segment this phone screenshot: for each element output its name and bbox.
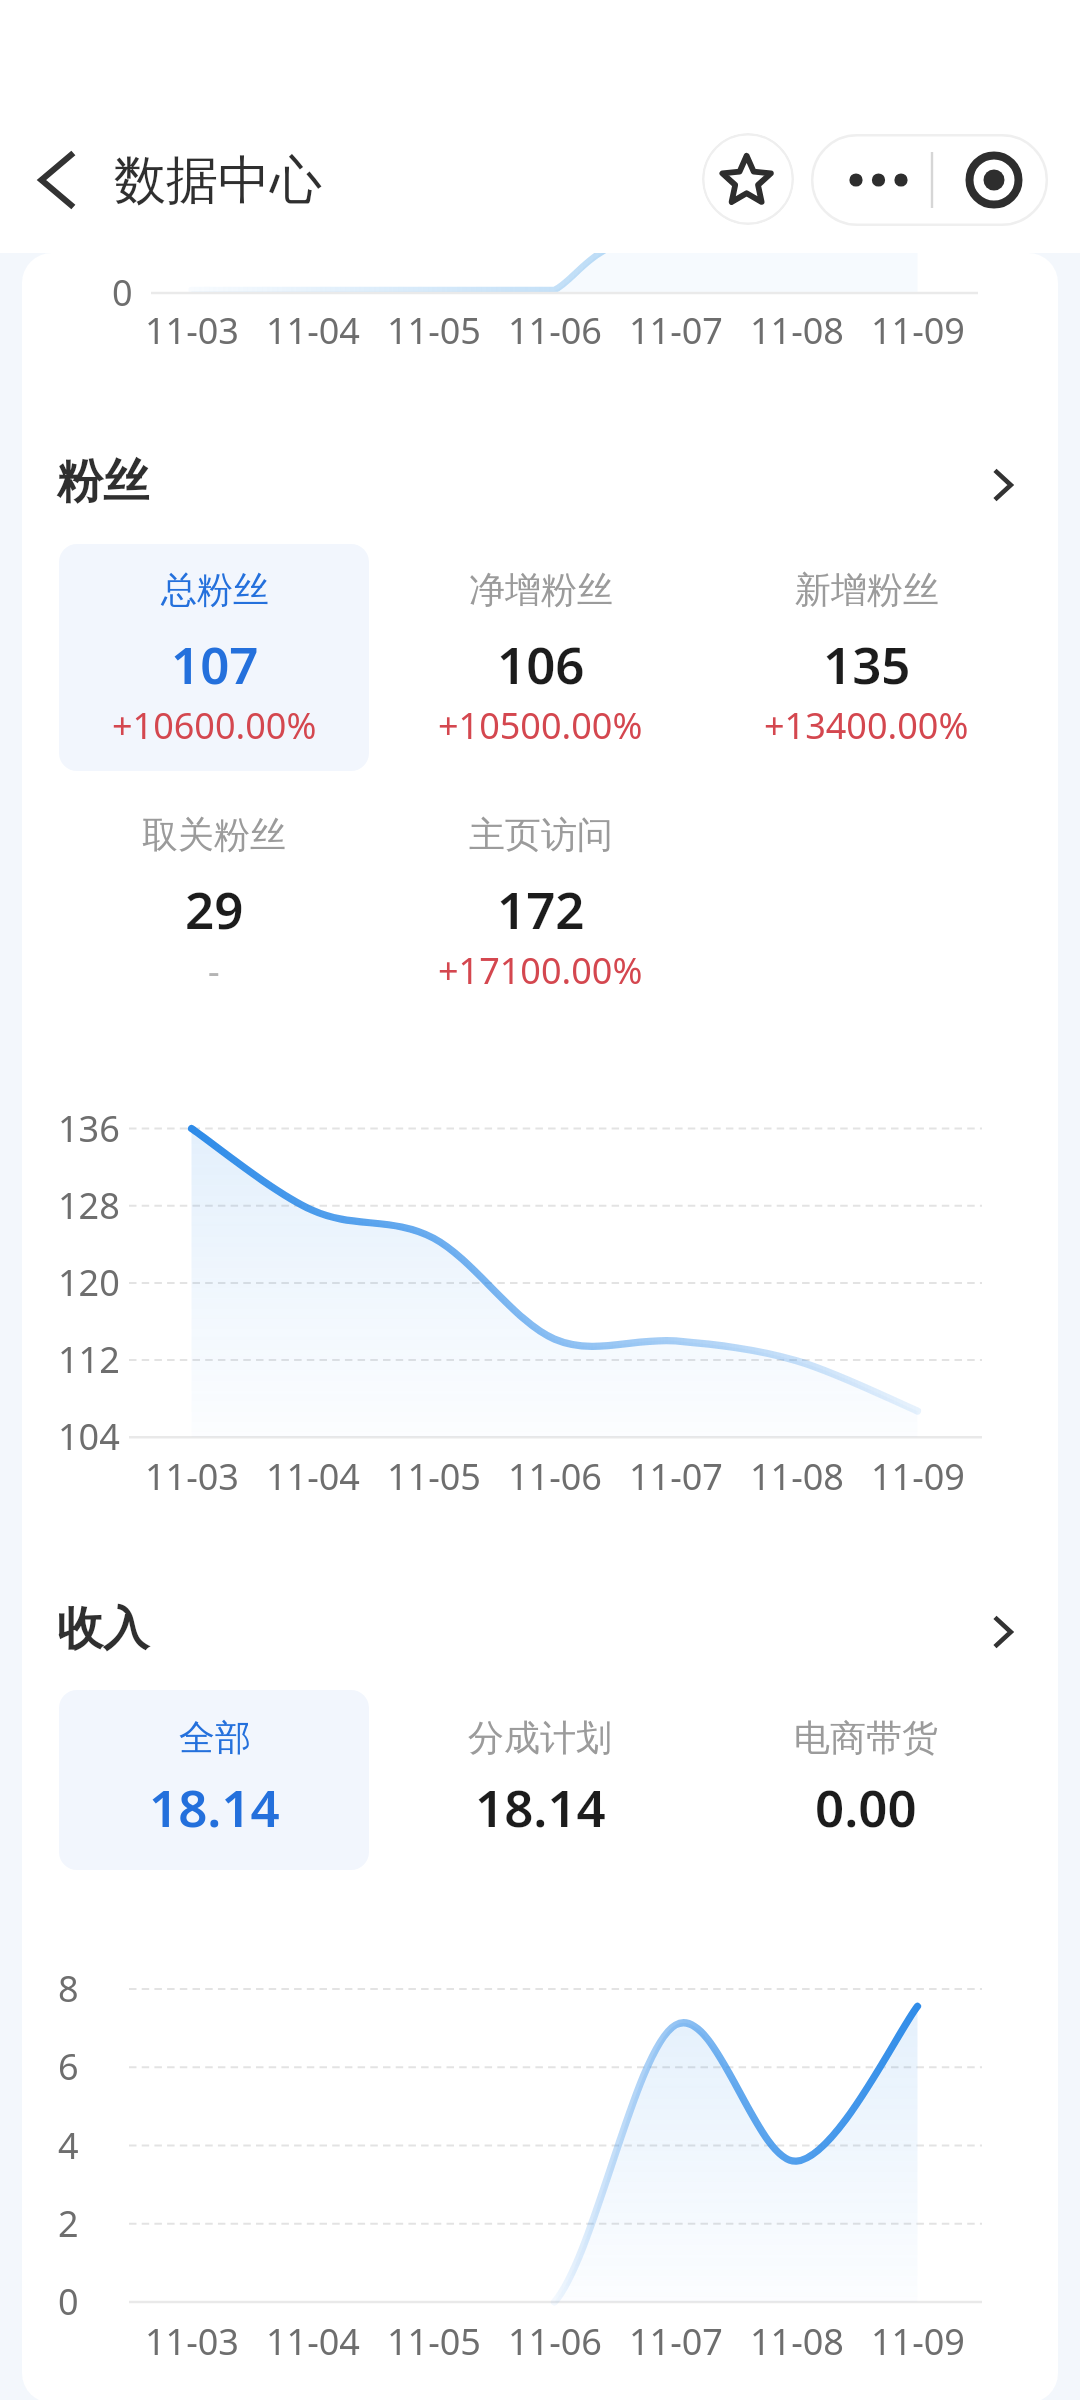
- staticText: 11-04: [266, 306, 360, 355]
- staticText: 11-08: [750, 306, 844, 355]
- staticText: -: [208, 946, 220, 995]
- staticText: 11-03: [145, 306, 239, 355]
- button[interactable]: 新增粉丝: [711, 544, 1021, 771]
- staticText: 11-05: [387, 1452, 481, 1501]
- staticText: +17100.00%: [438, 946, 643, 995]
- staticText: 粉丝: [57, 453, 149, 511]
- staticText: 172: [497, 874, 585, 943]
- staticText: 4: [58, 2121, 79, 2170]
- staticText: 11-06: [508, 306, 602, 355]
- staticText: 107: [171, 629, 259, 698]
- button[interactable]: 取关粉丝: [59, 789, 369, 1016]
- staticText: 主页访问: [469, 812, 613, 857]
- staticText: 分成计划: [468, 1715, 612, 1760]
- staticText: 11-08: [750, 1452, 844, 1501]
- staticText: 11-04: [266, 1452, 360, 1501]
- button[interactable]: 主页访问: [385, 789, 695, 1016]
- staticText: 净增粉丝: [469, 567, 613, 612]
- staticText: 18.14: [475, 1772, 606, 1841]
- staticText: 29: [185, 874, 244, 943]
- button[interactable]: 收入: [22, 1599, 1058, 1659]
- staticText: 2: [58, 2199, 79, 2248]
- staticText: 0: [112, 268, 133, 317]
- button[interactable]: Back: [14, 147, 98, 231]
- button[interactable]: Close: [931, 134, 1048, 226]
- staticText: 0: [58, 2277, 79, 2326]
- button[interactable]: Favorite: [702, 133, 794, 225]
- staticText: 11-09: [871, 2317, 965, 2366]
- button[interactable]: 粉丝: [22, 452, 1058, 512]
- staticText: 数据中心: [114, 148, 322, 214]
- staticText: 全部: [179, 1715, 251, 1760]
- staticText: 11-07: [629, 2317, 723, 2366]
- button[interactable]: 分成计划: [385, 1690, 695, 1870]
- staticText: 6: [58, 2042, 79, 2091]
- staticText: 11-07: [629, 1452, 723, 1501]
- staticText: 104: [58, 1412, 120, 1461]
- staticText: 电商带货: [794, 1715, 938, 1760]
- staticText: 新增粉丝: [795, 567, 939, 612]
- staticText: 11-04: [266, 2317, 360, 2366]
- staticText: 11-07: [629, 306, 723, 355]
- staticText: 11-03: [145, 1452, 239, 1501]
- staticText: 11-09: [871, 1452, 965, 1501]
- staticText: 135: [823, 629, 911, 698]
- staticText: 总粉丝: [161, 567, 269, 612]
- staticText: 18.14: [149, 1772, 280, 1841]
- button[interactable]: 电商带货: [711, 1690, 1021, 1870]
- button[interactable]: More options: [811, 134, 931, 226]
- staticText: +13400.00%: [764, 701, 969, 750]
- staticText: 收入: [57, 1600, 149, 1658]
- button[interactable]: 总粉丝: [59, 544, 369, 771]
- staticText: 11-08: [750, 2317, 844, 2366]
- staticText: 取关粉丝: [142, 812, 286, 857]
- staticText: 106: [497, 629, 585, 698]
- staticText: 11-09: [871, 306, 965, 355]
- staticText: 120: [58, 1258, 120, 1307]
- staticText: 112: [58, 1335, 120, 1384]
- button[interactable]: 全部: [59, 1690, 369, 1870]
- staticText: +10600.00%: [112, 701, 317, 750]
- staticText: +10500.00%: [438, 701, 643, 750]
- staticText: 11-06: [508, 1452, 602, 1501]
- staticText: 136: [58, 1104, 120, 1153]
- button[interactable]: 净增粉丝: [385, 544, 695, 771]
- staticText: 128: [58, 1181, 120, 1230]
- staticText: 11-06: [508, 2317, 602, 2366]
- staticText: 0.00: [815, 1772, 917, 1841]
- staticText: 11-03: [145, 2317, 239, 2366]
- staticText: 11-05: [387, 2317, 481, 2366]
- staticText: 11-05: [387, 306, 481, 355]
- staticText: 8: [58, 1964, 79, 2013]
